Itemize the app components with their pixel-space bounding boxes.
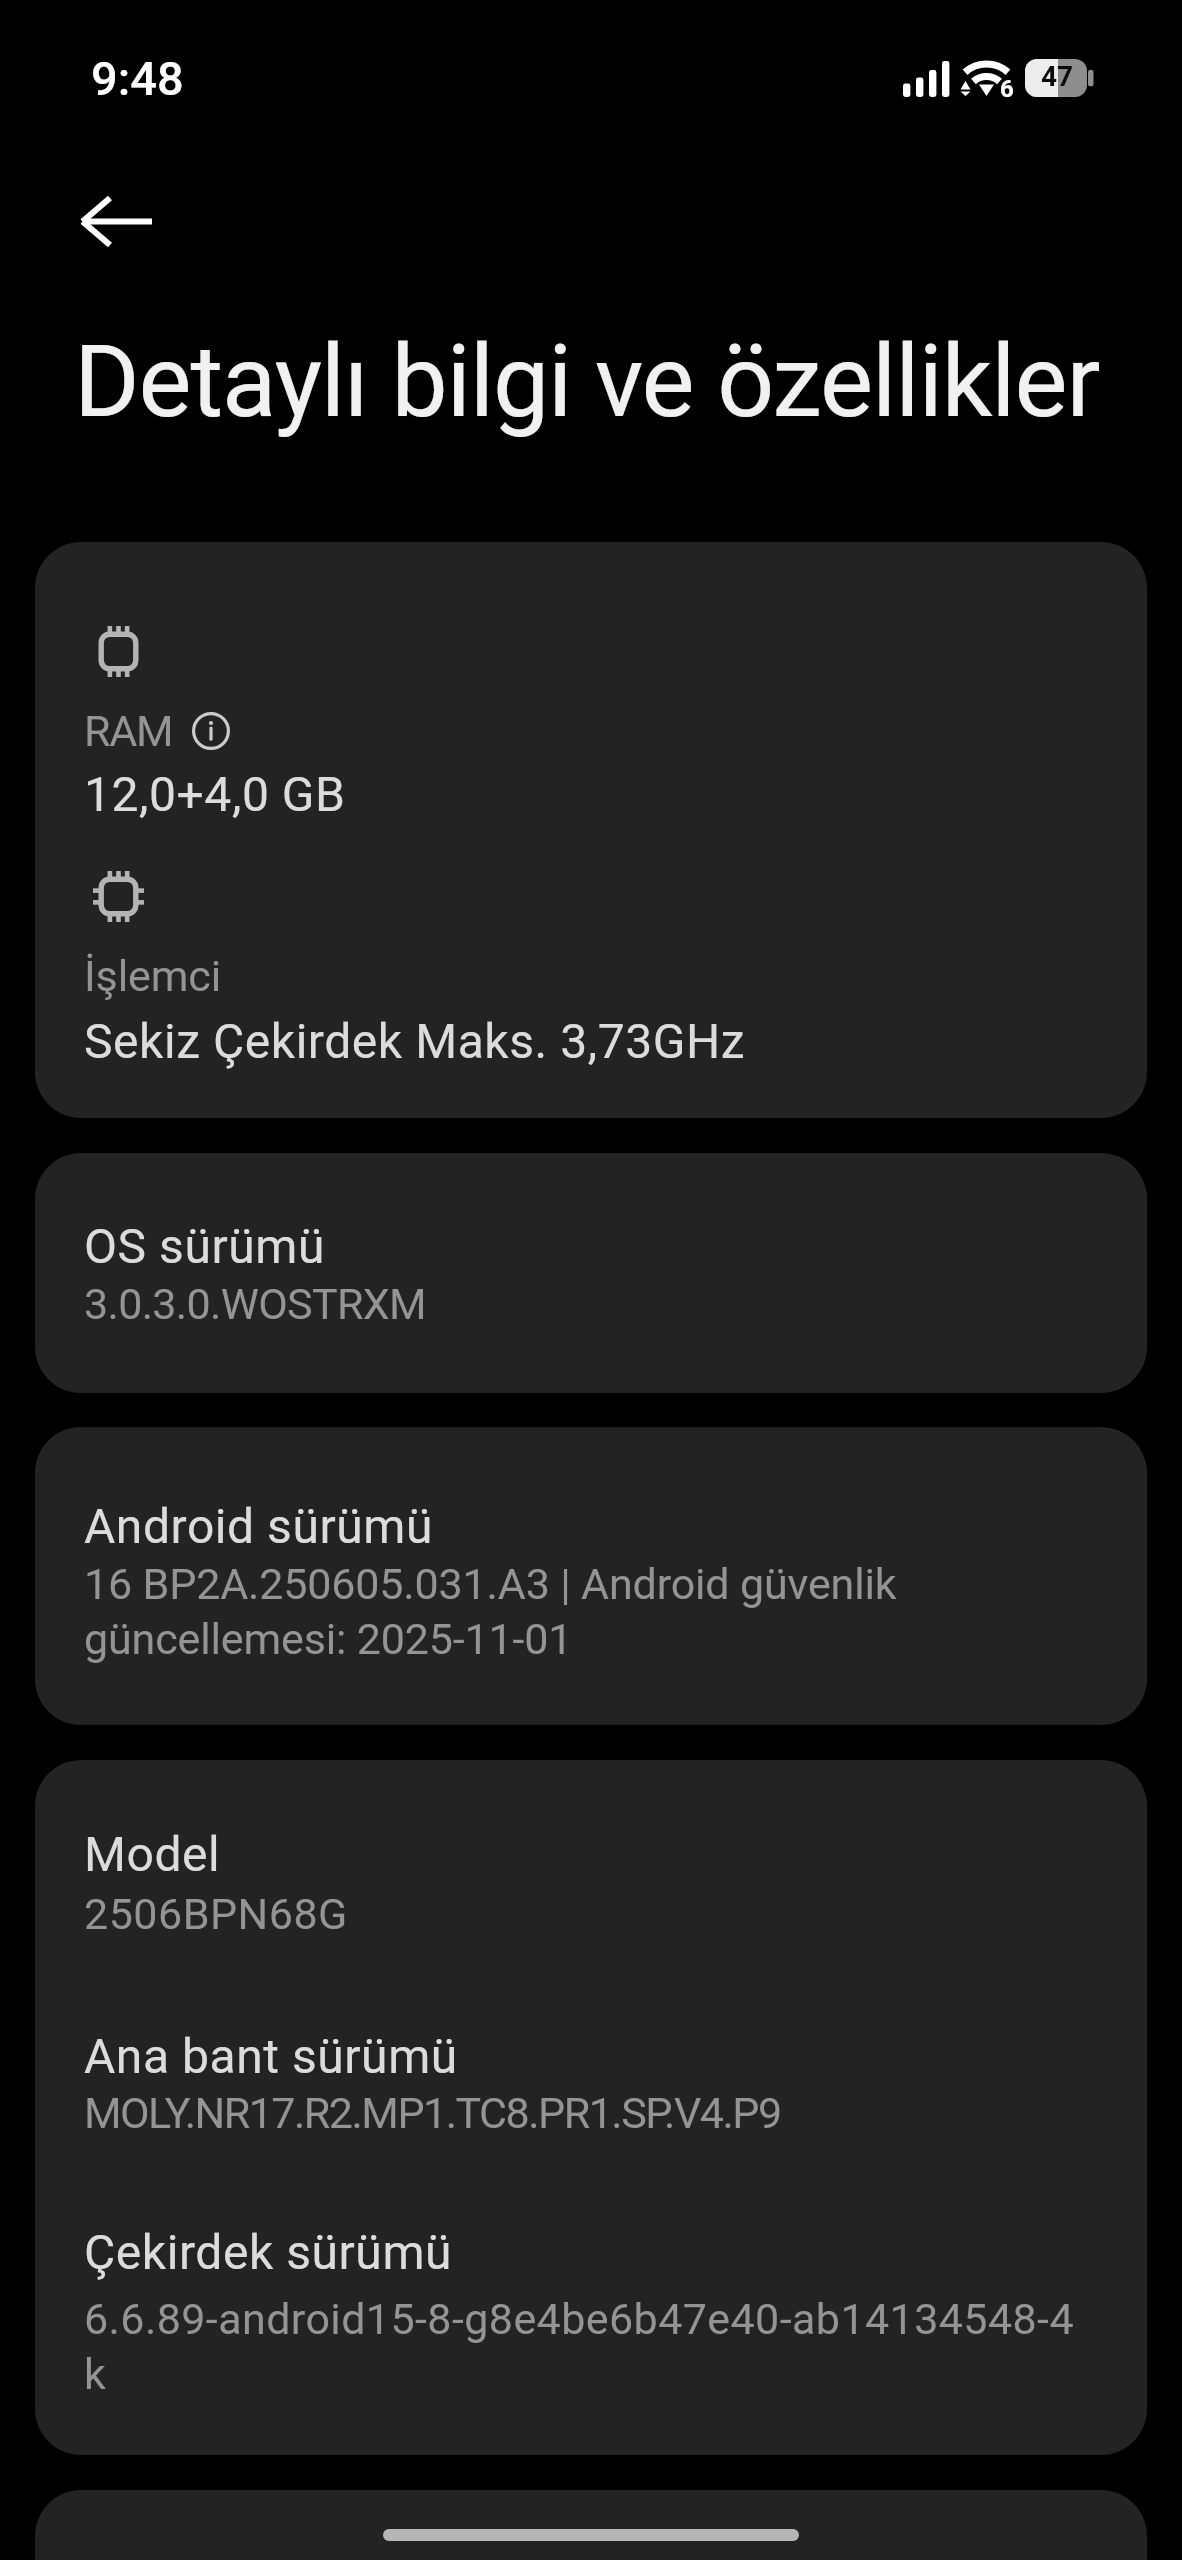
button[interactable]	[35, 1153, 1147, 1393]
button[interactable]	[35, 1760, 1147, 2455]
staticText: 2506BPN68G	[84, 1885, 1124, 1940]
staticText: 16 BP2A.250605.031.A3 | Android güvenlik…	[84, 1555, 914, 1665]
other: Islemci	[93, 871, 144, 922]
staticText: Ana bant sürümü	[84, 2029, 1124, 2085]
staticText: Sekiz Çekirdek Maks. 3,73GHz	[84, 1014, 1124, 1070]
staticText: RAM	[84, 702, 1124, 757]
button[interactable]: Geri	[59, 164, 175, 280]
staticText: 12,0+4,0 GB	[84, 767, 1124, 823]
staticText: 3.0.3.0.WOSTRXM	[84, 1275, 1124, 1330]
staticText: 6	[1000, 77, 1014, 102]
staticText: 6.6.89-android15-8-g8e4be6b47e40-ab14134…	[84, 2290, 1124, 2400]
staticText: Android sürümü	[84, 1499, 1124, 1555]
other: Wi-Fi	[958, 55, 1014, 100]
staticText: OS sürümü	[84, 1219, 1124, 1275]
staticText: 9:48	[91, 54, 184, 106]
staticText: MOLY.NR17.R2.MP1.TC8.PR1.SP.V4.P9	[84, 2084, 1124, 2139]
button[interactable]	[35, 2490, 1147, 2560]
other: Sinyal gucu	[903, 60, 950, 97]
staticText: İşlemci	[84, 947, 1124, 1002]
button[interactable]	[35, 1427, 1147, 1725]
other: Pil %47	[1025, 59, 1093, 97]
button[interactable]	[35, 542, 1147, 1118]
staticText: Detaylı bilgi ve özellikler	[74, 323, 1100, 441]
button[interactable]: RAM bilgisi	[192, 712, 230, 750]
staticText: Model	[84, 1827, 1124, 1883]
staticText: 47	[1041, 63, 1074, 92]
other: Bellek	[93, 626, 144, 677]
staticText: Çekirdek sürümü	[84, 2225, 1124, 2281]
